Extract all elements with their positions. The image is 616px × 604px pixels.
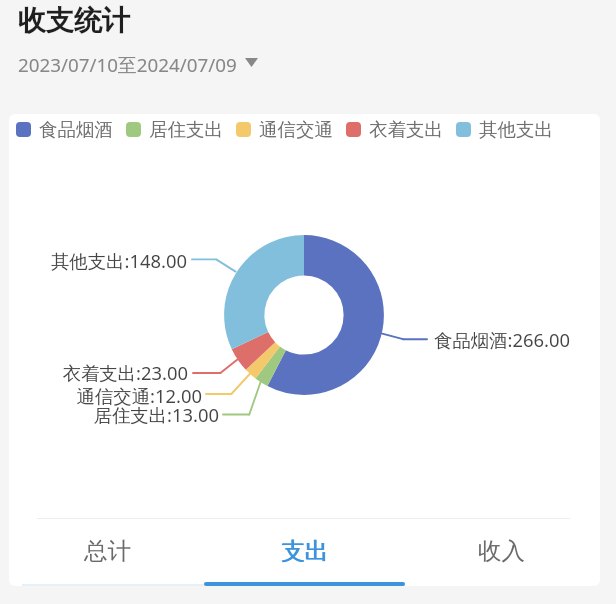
button[interactable]: 总计 <box>9 519 206 586</box>
button[interactable]: 食品烟酒 <box>16 118 113 141</box>
button[interactable]: 通信交通 <box>236 118 333 141</box>
button[interactable]: 收入 <box>403 519 600 586</box>
staticText: 支出 <box>282 536 329 566</box>
button[interactable]: 其他支出 <box>456 118 553 141</box>
staticText: 居住支出 <box>149 118 223 141</box>
staticText: 居住支出:13.00 <box>9 402 219 427</box>
staticText: 衣着支出 <box>369 118 443 141</box>
button[interactable]: 2023/07/10至2024/07/09 <box>18 52 258 78</box>
staticText: 其他支出:148.00 <box>9 248 187 273</box>
button[interactable]: 衣着支出 <box>346 118 443 141</box>
staticText: 食品烟酒:266.00 <box>434 327 571 352</box>
button[interactable]: 居住支出 <box>126 118 223 141</box>
staticText: 支出 <box>281 536 328 566</box>
staticText: 收入 <box>478 536 525 566</box>
staticText: 收支统计 <box>18 3 130 38</box>
staticText: 通信交通:12.00 <box>9 383 202 408</box>
button[interactable]: 支出 <box>206 519 403 586</box>
other: Change date range <box>245 58 258 67</box>
staticText: 总计 <box>84 536 131 566</box>
staticText: 其他支出 <box>479 118 553 141</box>
staticText: 通信交通 <box>259 118 333 141</box>
other: Expense breakdown donut chart <box>9 114 600 586</box>
staticText: 2023/07/10至2024/07/09 <box>18 52 237 78</box>
staticText: 食品烟酒 <box>39 118 113 141</box>
staticText: 衣着支出:23.00 <box>9 360 188 385</box>
